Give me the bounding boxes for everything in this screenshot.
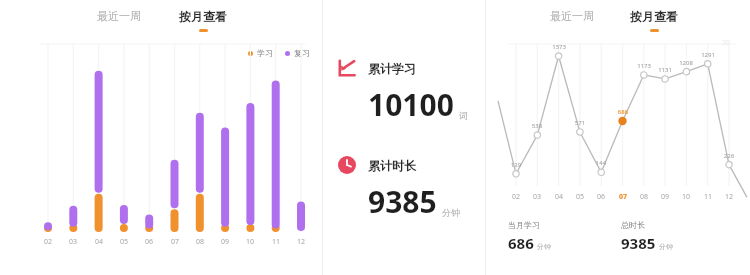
staticText: 最近一周 xyxy=(97,9,141,23)
staticText: 分钟 xyxy=(442,207,460,218)
button[interactable]: 最近一周 xyxy=(548,8,596,24)
staticText: 10100 xyxy=(368,84,454,125)
staticText: 09 xyxy=(216,237,234,247)
staticText: 11 xyxy=(699,192,717,202)
staticText: 07 xyxy=(614,192,632,202)
staticText: 06 xyxy=(592,192,610,202)
staticText: 02 xyxy=(507,192,525,202)
staticText: 08 xyxy=(191,237,209,247)
staticText: 538 xyxy=(523,122,551,130)
staticText: 当月学习 xyxy=(508,220,540,230)
staticText: 累计时长 xyxy=(368,158,416,173)
other: 累计时长 xyxy=(337,155,357,175)
staticText: 04 xyxy=(90,237,108,247)
staticText: 20 xyxy=(722,38,731,48)
other: 累计学习 xyxy=(337,58,357,78)
staticText: 05 xyxy=(115,237,133,247)
staticText: 226 xyxy=(715,152,743,160)
staticText: 总时长 xyxy=(621,220,645,230)
staticText: 03 xyxy=(528,192,546,202)
staticText: 累计学习 xyxy=(368,61,416,76)
staticText: 02 xyxy=(39,237,57,247)
staticText: 9385 xyxy=(621,233,656,253)
staticText: 1291 xyxy=(694,51,722,59)
staticText: 08 xyxy=(635,192,653,202)
button[interactable]: 累计学习 xyxy=(337,58,468,125)
staticText: 11 xyxy=(267,237,285,247)
staticText: 07 xyxy=(166,237,184,247)
staticText: 571 xyxy=(566,119,594,127)
staticText: 06 xyxy=(140,237,158,247)
staticText: 05 xyxy=(571,192,589,202)
staticText: 686 xyxy=(508,233,534,253)
staticText: 144 xyxy=(587,159,615,167)
button[interactable]: 总时长 xyxy=(621,220,673,253)
staticText: 分钟 xyxy=(659,242,673,251)
staticText: 129 xyxy=(502,161,530,169)
staticText: 686 xyxy=(609,108,637,116)
staticText: 12 xyxy=(292,237,310,247)
staticText: 1131 xyxy=(651,66,679,74)
staticText: 按月查看 xyxy=(630,9,678,24)
staticText: 1173 xyxy=(630,62,658,70)
button[interactable]: 最近一周 xyxy=(95,8,143,24)
staticText: 12 xyxy=(720,192,738,202)
staticText: 10 xyxy=(677,192,695,202)
button[interactable]: 按月查看 xyxy=(628,8,680,33)
button[interactable]: 累计时长 xyxy=(337,155,460,222)
staticText: 10 xyxy=(241,237,259,247)
button[interactable]: 按月查看 xyxy=(177,8,229,33)
staticText: 03 xyxy=(64,237,82,247)
staticText: 分钟 xyxy=(537,242,551,251)
staticText: 按月查看 xyxy=(179,9,227,24)
staticText: 04 xyxy=(550,192,568,202)
staticText: 9385 xyxy=(368,181,437,222)
staticText: 复习 xyxy=(294,48,310,58)
staticText: 最近一周 xyxy=(550,9,594,23)
staticText: 词 xyxy=(459,110,468,121)
staticText: 学习 xyxy=(257,48,273,58)
staticText: 1208 xyxy=(672,59,700,67)
button[interactable]: 当月学习 xyxy=(508,220,551,253)
staticText: 09 xyxy=(656,192,674,202)
staticText: 1373 xyxy=(545,43,573,51)
